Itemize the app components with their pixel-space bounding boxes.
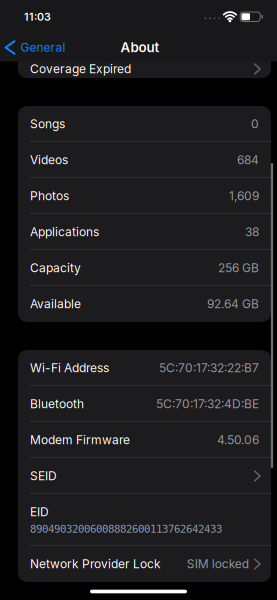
- staticText: Songs: [30, 117, 65, 131]
- staticText: 11:03: [24, 10, 51, 23]
- staticText: Wi-Fi Address: [30, 361, 109, 375]
- staticText: General: [20, 40, 65, 55]
- staticText: About: [120, 40, 159, 55]
- staticText: Capacity: [30, 261, 81, 275]
- staticText: 38: [245, 225, 259, 239]
- staticText: 684: [237, 153, 259, 167]
- button[interactable]: Network Provider Lock: [18, 546, 271, 582]
- staticText: EID: [30, 505, 49, 519]
- staticText: Applications: [30, 225, 99, 239]
- button[interactable]: SEID: [18, 458, 271, 494]
- staticText: 5C:70:17:32:4D:BE: [156, 397, 259, 411]
- staticText: 5C:70:17:32:22:B7: [159, 361, 259, 375]
- staticText: Coverage Expired: [30, 62, 131, 76]
- staticText: Network Provider Lock: [30, 557, 161, 571]
- staticText: SEID: [30, 469, 57, 483]
- staticText: 256 GB: [218, 261, 259, 275]
- staticText: SIM locked: [187, 557, 249, 571]
- staticText: Modem Firmware: [30, 433, 130, 447]
- staticText: Available: [30, 297, 81, 311]
- staticText: 89049032006008882600113762642433: [30, 523, 222, 535]
- staticText: Videos: [30, 153, 68, 167]
- staticText: 4.50.06: [217, 433, 259, 447]
- button[interactable]: Back: [5, 40, 65, 55]
- staticText: Photos: [30, 189, 69, 203]
- staticText: Bluetooth: [30, 397, 84, 411]
- staticText: 0: [251, 117, 259, 131]
- button[interactable]: Coverage Expired: [18, 50, 271, 78]
- staticText: 1,609: [229, 189, 259, 203]
- staticText: 92.64 GB: [207, 297, 259, 311]
